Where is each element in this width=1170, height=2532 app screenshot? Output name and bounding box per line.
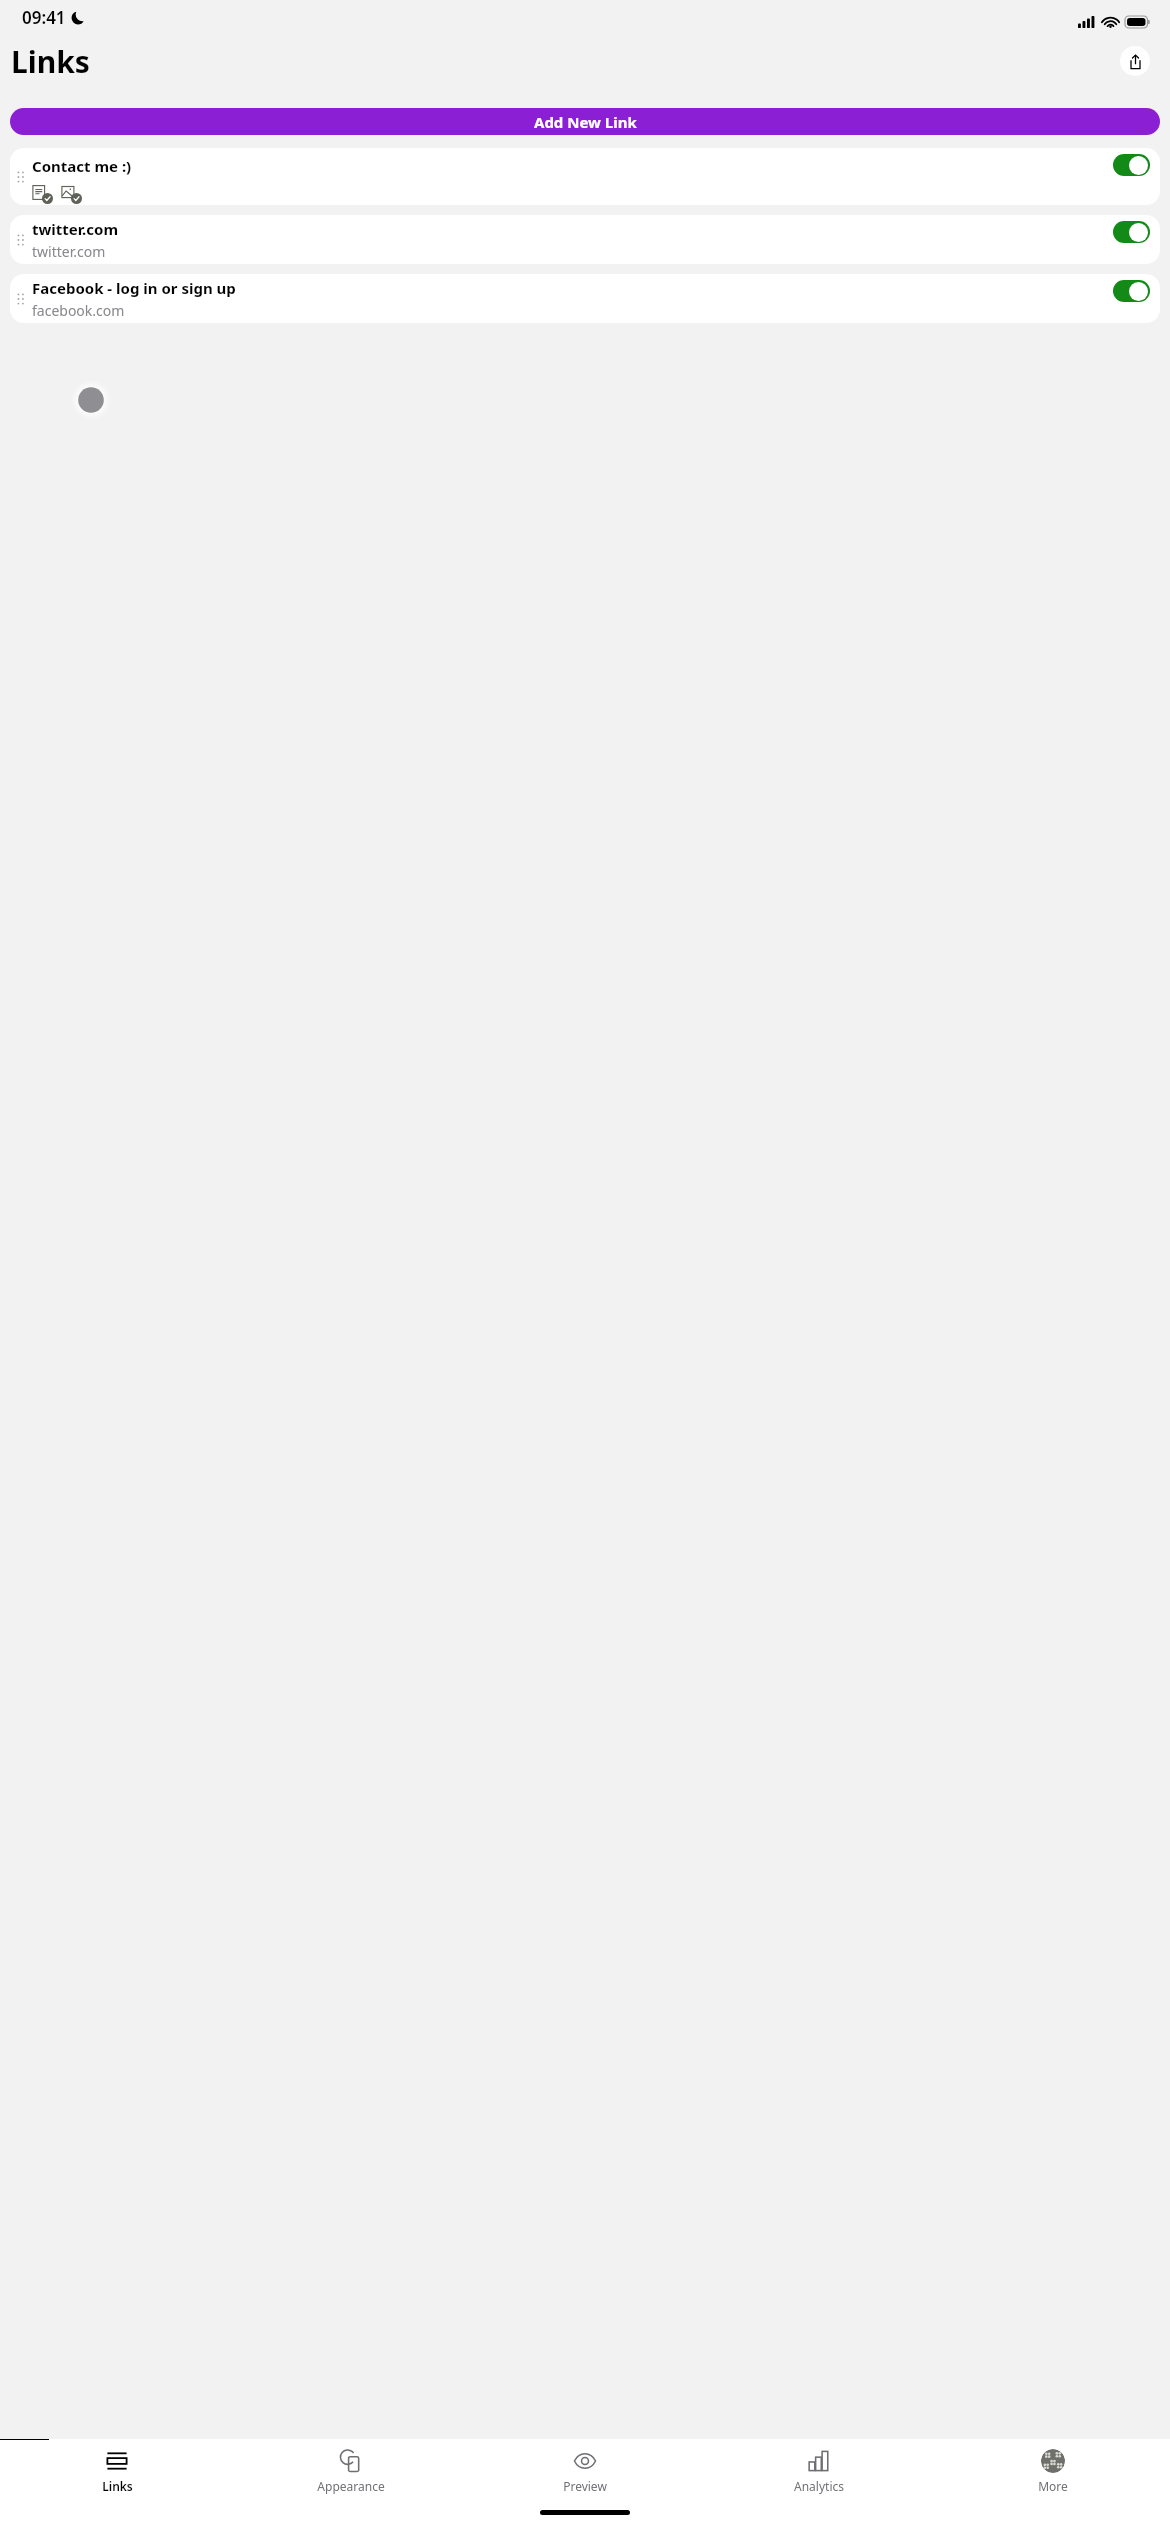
staticText: Preview: [563, 2478, 607, 2494]
staticText: Appearance: [317, 2478, 385, 2494]
staticText: Contact me :): [32, 156, 132, 176]
button[interactable]: More: [936, 2440, 1170, 2503]
staticText: Links: [11, 41, 90, 82]
staticText: Facebook - log in or sign up: [32, 278, 236, 298]
staticText: Analytics: [794, 2478, 844, 2494]
staticText: More: [1038, 2478, 1068, 2494]
staticText: Add New Link: [534, 112, 637, 132]
button[interactable]: Toggle link: [1113, 280, 1150, 302]
button[interactable]: Links: [0, 2440, 234, 2503]
staticText: twitter.com: [32, 219, 119, 239]
other: More: [1041, 2449, 1065, 2473]
button[interactable]: Appearance: [234, 2440, 468, 2503]
button[interactable]: Preview: [468, 2440, 702, 2503]
button[interactable]: Contact me :): [10, 148, 1160, 205]
staticText: facebook.com: [32, 301, 125, 320]
button[interactable]: Toggle link: [1113, 221, 1150, 243]
button[interactable]: Analytics: [702, 2440, 936, 2503]
staticText: twitter.com: [32, 242, 106, 261]
button[interactable]: Facebook - log in or sign up: [10, 274, 1160, 323]
staticText: Links: [102, 2478, 133, 2494]
button[interactable]: Add New Link: [10, 108, 1160, 135]
button[interactable]: Share: [1120, 46, 1150, 76]
staticText: 09:41: [22, 6, 66, 29]
button[interactable]: twitter.com: [10, 215, 1160, 264]
button[interactable]: Toggle link: [1113, 154, 1150, 176]
